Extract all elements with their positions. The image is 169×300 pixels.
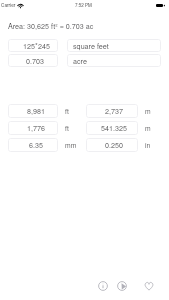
button[interactable]: 125*245 xyxy=(8,39,58,52)
staticText: m xyxy=(145,123,151,133)
staticText: ft xyxy=(65,123,69,133)
staticText: in xyxy=(145,140,151,150)
button[interactable]: Favorite xyxy=(142,279,156,293)
button[interactable]: square feet xyxy=(67,39,161,52)
button[interactable]: Play xyxy=(115,279,129,293)
button[interactable]: Info xyxy=(96,279,110,293)
button[interactable]: 2,737 xyxy=(86,104,138,118)
button[interactable]: 8,981 xyxy=(8,104,58,118)
staticText: m xyxy=(145,106,151,116)
staticText: 0.250 xyxy=(105,140,123,150)
staticText: 7:52 PM xyxy=(75,2,92,8)
staticText: 541.325 xyxy=(101,123,127,133)
staticText: 0.703 xyxy=(26,56,44,66)
staticText: 8,981 xyxy=(27,106,45,116)
staticText: 6.35 xyxy=(29,140,43,150)
staticText: Carrier xyxy=(1,2,16,9)
button[interactable]: acre xyxy=(67,54,161,67)
button[interactable]: 6.35 xyxy=(8,138,58,152)
staticText: 2,737 xyxy=(105,106,123,116)
staticText: 125*245 xyxy=(23,41,50,51)
button[interactable]: 0.250 xyxy=(86,138,138,152)
staticText: mm xyxy=(65,140,77,150)
button[interactable]: 0.703 xyxy=(8,54,58,67)
staticText: 1,776 xyxy=(27,123,45,133)
button[interactable]: 541.325 xyxy=(86,121,138,135)
staticText: ft xyxy=(65,106,69,116)
staticText: Area: 30,625 ft² = 0.703 ac xyxy=(8,21,94,31)
button[interactable]: 1,776 xyxy=(8,121,58,135)
staticText: acre xyxy=(73,56,87,66)
staticText: square feet xyxy=(73,41,109,51)
